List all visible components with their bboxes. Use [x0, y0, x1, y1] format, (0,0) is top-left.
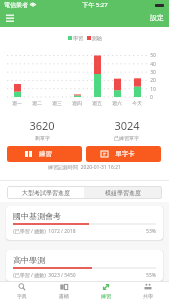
button[interactable]: 共學 [127, 282, 169, 300]
button[interactable]: 單字卡 [86, 146, 161, 162]
staticText: 已練習單字 [114, 135, 139, 141]
staticText: 練習 [101, 293, 111, 299]
staticText: 學習 [73, 35, 83, 41]
staticText: 測驗 [92, 35, 102, 41]
staticText: 50 [150, 52, 156, 59]
staticText: (已學習 / 總數) 1072 / 2018 [13, 228, 76, 235]
staticText: 練習 [39, 150, 52, 158]
staticText: 設定 [150, 13, 164, 22]
staticText: 國中基測會考 [13, 211, 61, 221]
staticText: 週六 [112, 100, 122, 106]
staticText: 書櫃 [59, 293, 69, 299]
staticText: 週三 [52, 100, 62, 106]
staticText: 3024 [114, 118, 140, 133]
staticText: (已學習 / 總數) 3023 / 5450 [13, 272, 76, 279]
button[interactable]: 書櫃 [43, 282, 85, 300]
staticText: 模組學習進度 [105, 189, 141, 197]
staticText: 大型考試學習進度 [22, 189, 70, 197]
staticText: 今天 [132, 100, 142, 106]
staticText: 3620 [29, 118, 55, 133]
button[interactable]: 練習 [85, 282, 127, 300]
button[interactable]: 大型考試學習進度 [7, 186, 84, 199]
staticText: 電信業者 [4, 1, 28, 9]
staticText: 週一 [12, 100, 22, 106]
staticText: 下午 5:27 [82, 1, 108, 9]
staticText: 30 [150, 69, 156, 76]
button[interactable]: 設定 [150, 10, 164, 24]
button[interactable]: 字典 [0, 282, 43, 300]
button[interactable]: 高中學測 [6, 250, 163, 281]
button[interactable]: 模組學習進度 [84, 186, 162, 199]
staticText: 週二 [32, 100, 42, 106]
staticText: 55% [146, 272, 156, 279]
staticText: 練習記錄時間 2020-01-31 16:21 [48, 164, 121, 171]
staticText: 20 [150, 77, 156, 84]
staticText: 高中學測 [13, 255, 45, 265]
staticText: 0 [150, 94, 153, 101]
button[interactable]: 練習 [7, 146, 82, 162]
staticText: 40 [150, 61, 156, 68]
staticText: 週五 [92, 100, 102, 106]
staticText: 53% [146, 228, 156, 235]
button[interactable]: 國中基測會考 [6, 206, 163, 240]
staticText: 單字卡 [115, 150, 135, 158]
staticText: 10 [150, 86, 156, 93]
button[interactable]: Menu [3, 11, 16, 24]
staticText: 週四 [72, 100, 82, 106]
staticText: 剩單字 [35, 135, 50, 141]
staticText: 字典 [17, 293, 27, 299]
staticText: 共學 [143, 293, 153, 299]
